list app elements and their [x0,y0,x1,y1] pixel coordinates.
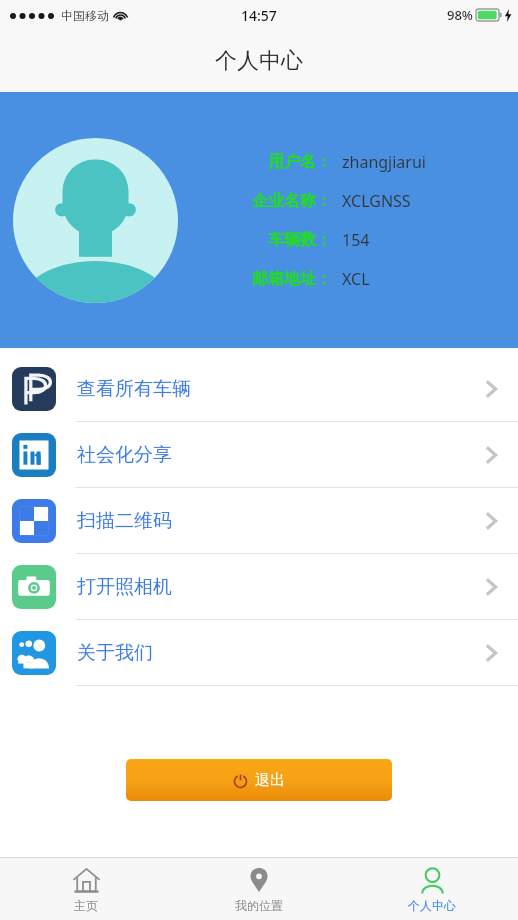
staticText: 邮箱地址： [252,269,332,289]
staticText: 154 [342,229,370,251]
staticText: 个人中心 [408,898,456,913]
button[interactable]: 退出 [126,759,392,801]
staticText: 关于我们 [77,641,153,665]
staticText: 企业名称： [252,191,332,211]
button[interactable]: 查看所有车辆 [0,356,518,422]
staticText: 98% [447,6,473,24]
button[interactable]: 扫描二维码 [0,488,518,554]
staticText: XCL [342,268,370,290]
staticText: 打开照相机 [77,575,172,599]
staticText: 车辆数： [268,230,332,250]
button[interactable]: 社会化分享 [0,422,518,488]
staticText: 查看所有车辆 [77,377,191,401]
staticText: 扫描二维码 [77,509,172,533]
button[interactable]: 主页 [0,858,172,920]
staticText: XCLGNSS [342,190,411,212]
staticText: 社会化分享 [77,443,172,467]
staticText: zhangjiarui [342,151,426,173]
button[interactable]: 打开照相机 [0,554,518,620]
button[interactable]: 个人中心 [345,858,518,920]
staticText: 14:57 [241,6,277,25]
staticText: 退出 [255,771,285,790]
staticText: 中国移动 [61,8,109,23]
staticText: 个人中心 [215,47,303,75]
staticText: 用户名： [268,152,332,172]
button[interactable]: 关于我们 [0,620,518,686]
staticText: 我的位置 [235,898,283,913]
staticText: 主页 [74,898,98,913]
button[interactable]: 我的位置 [172,858,345,920]
